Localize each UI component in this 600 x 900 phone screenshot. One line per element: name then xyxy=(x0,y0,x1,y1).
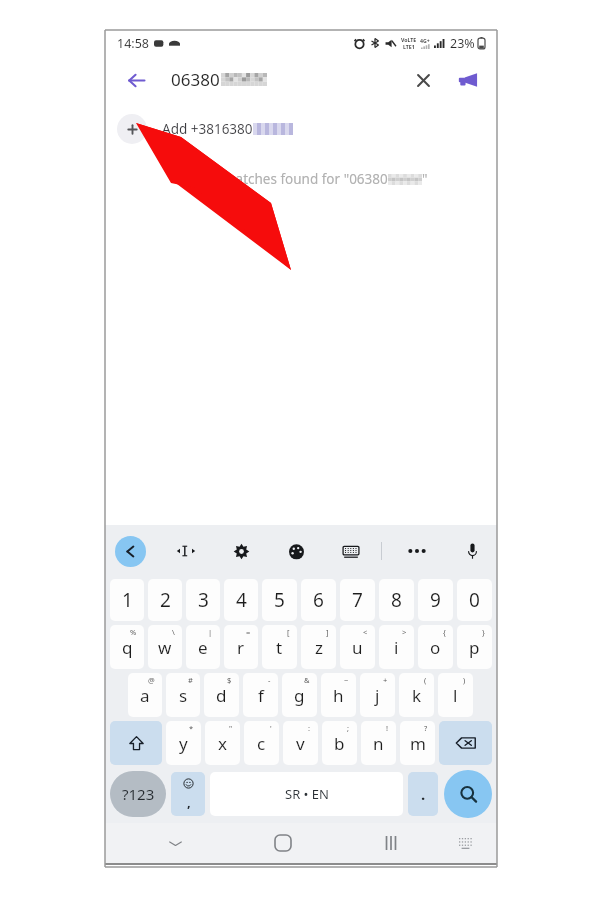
button[interactable]: 2 xyxy=(148,579,182,621)
staticText: LTE1 xyxy=(403,43,415,50)
staticText: s xyxy=(179,684,188,707)
button[interactable]: Backspace xyxy=(439,721,492,765)
button[interactable]: q xyxy=(110,625,144,669)
staticText: p xyxy=(469,636,480,659)
button[interactable]: Hide keyboard xyxy=(158,826,192,860)
staticText: | xyxy=(208,627,213,637)
button[interactable]: ?123 xyxy=(110,771,166,817)
staticText: g xyxy=(294,684,305,707)
button[interactable]: Home xyxy=(266,826,300,860)
button[interactable]: Recents xyxy=(374,826,408,860)
staticText: 4 xyxy=(236,587,247,613)
staticText: l xyxy=(453,684,458,707)
staticText: j xyxy=(375,684,380,707)
button[interactable]: More options xyxy=(402,536,432,566)
staticText: + xyxy=(383,675,388,685)
button[interactable]: u xyxy=(340,625,375,669)
button[interactable]: r xyxy=(224,625,258,669)
staticText: ? xyxy=(424,723,428,733)
staticText: 14:58 xyxy=(117,35,149,52)
staticText: ; xyxy=(347,723,350,733)
staticText: # xyxy=(188,675,193,685)
button[interactable]: Announcements xyxy=(449,62,485,98)
staticText: { xyxy=(443,627,446,637)
button[interactable]: i xyxy=(379,625,414,669)
staticText: Add +3816380 xyxy=(162,120,253,138)
button[interactable]: b xyxy=(322,721,357,765)
staticText: * xyxy=(189,723,194,733)
button[interactable]: n xyxy=(361,721,396,765)
button[interactable]: m xyxy=(400,721,435,765)
button[interactable]: 9 xyxy=(418,579,453,621)
button[interactable]: Voice input xyxy=(457,536,487,566)
button[interactable]: Themes xyxy=(281,536,311,566)
staticText: 06380 xyxy=(171,68,220,91)
button[interactable]: 6 xyxy=(301,579,336,621)
button[interactable]: Back xyxy=(115,536,146,567)
button[interactable]: d xyxy=(204,673,239,717)
button[interactable]: Period xyxy=(408,772,438,816)
staticText: v xyxy=(296,732,305,755)
button[interactable]: h xyxy=(321,673,356,717)
staticText: w xyxy=(158,636,172,659)
button[interactable]: v xyxy=(283,721,318,765)
staticText: ~ xyxy=(344,675,349,685)
staticText: t xyxy=(276,636,283,659)
staticText: 6 xyxy=(313,587,324,613)
staticText: o xyxy=(430,636,441,659)
button[interactable]: s xyxy=(166,673,200,717)
staticText: f xyxy=(258,684,264,707)
button[interactable]: 4 xyxy=(224,579,258,621)
button[interactable]: 7 xyxy=(340,579,375,621)
button[interactable]: e xyxy=(186,625,220,669)
staticText: [ xyxy=(287,627,290,637)
button[interactable]: 3 xyxy=(186,579,220,621)
button[interactable]: y xyxy=(166,721,201,765)
button[interactable]: k xyxy=(399,673,434,717)
button[interactable]: a xyxy=(128,673,162,717)
button[interactable]: c xyxy=(244,721,279,765)
staticText: x xyxy=(218,732,227,755)
button[interactable]: p xyxy=(457,625,492,669)
button[interactable]: 8 xyxy=(379,579,414,621)
button[interactable]: Search xyxy=(444,770,492,818)
staticText: y xyxy=(179,732,188,755)
button[interactable]: Add +3816380 xyxy=(105,108,497,150)
button[interactable]: Emoji and comma xyxy=(171,772,205,816)
button[interactable]: Switch keyboard xyxy=(450,828,480,858)
button[interactable]: SR • EN xyxy=(210,772,403,816)
button[interactable]: w xyxy=(148,625,182,669)
button[interactable]: Cursor control xyxy=(171,536,201,566)
button[interactable]: Shift xyxy=(110,721,162,765)
staticText: c xyxy=(257,732,266,755)
button[interactable]: f xyxy=(243,673,278,717)
staticText: ?123 xyxy=(122,784,155,804)
button[interactable]: z xyxy=(301,625,336,669)
staticText: i xyxy=(394,636,399,659)
staticText: < xyxy=(363,627,368,637)
button[interactable]: Back xyxy=(119,63,153,97)
staticText: r xyxy=(237,636,245,659)
button[interactable]: o xyxy=(418,625,453,669)
staticText: @ xyxy=(148,675,155,685)
staticText: , xyxy=(187,793,191,811)
button[interactable]: Clear xyxy=(405,62,441,98)
button[interactable]: j xyxy=(360,673,395,717)
staticText: ] xyxy=(326,627,329,637)
button[interactable]: 1 xyxy=(110,579,144,621)
staticText: 9 xyxy=(430,587,441,613)
button[interactable]: l xyxy=(438,673,473,717)
staticText: . xyxy=(421,784,426,804)
staticText: $ xyxy=(227,675,232,685)
staticText: 2 xyxy=(160,587,171,613)
button[interactable]: Settings xyxy=(226,536,256,566)
button[interactable]: x xyxy=(205,721,240,765)
staticText: = xyxy=(246,627,251,637)
button[interactable]: Keyboard modes xyxy=(336,536,366,566)
staticText: SR • EN xyxy=(285,785,329,803)
button[interactable]: t xyxy=(262,625,297,669)
button[interactable]: 0 xyxy=(457,579,492,621)
staticText: 3 xyxy=(198,587,209,613)
button[interactable]: g xyxy=(282,673,317,717)
button[interactable]: 5 xyxy=(262,579,297,621)
